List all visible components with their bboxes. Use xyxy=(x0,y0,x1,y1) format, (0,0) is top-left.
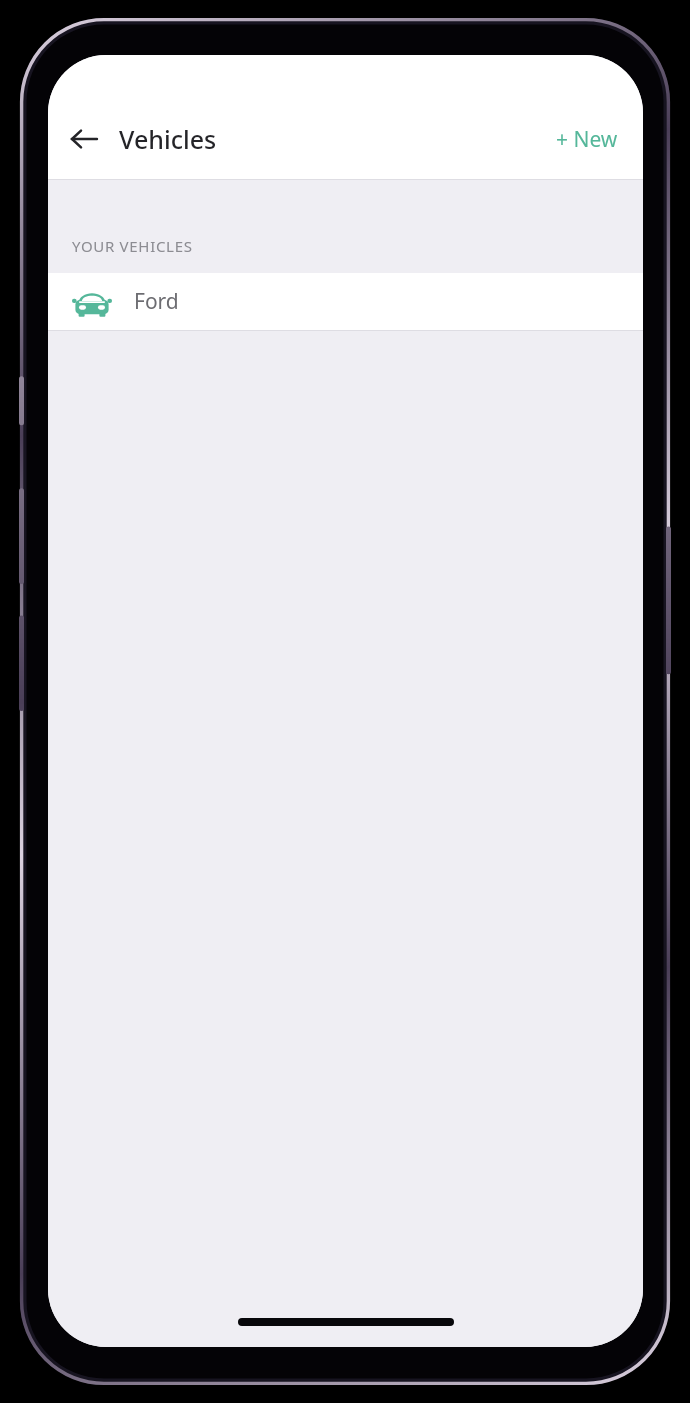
staticText: YOUR VEHICLES xyxy=(72,236,193,256)
button[interactable]: Ford xyxy=(48,273,643,330)
staticText: Vehicles xyxy=(119,122,217,156)
staticText: Ford xyxy=(134,287,179,316)
button[interactable]: Back xyxy=(60,115,108,163)
staticText: + New xyxy=(556,125,618,154)
button[interactable]: + New xyxy=(541,116,633,163)
